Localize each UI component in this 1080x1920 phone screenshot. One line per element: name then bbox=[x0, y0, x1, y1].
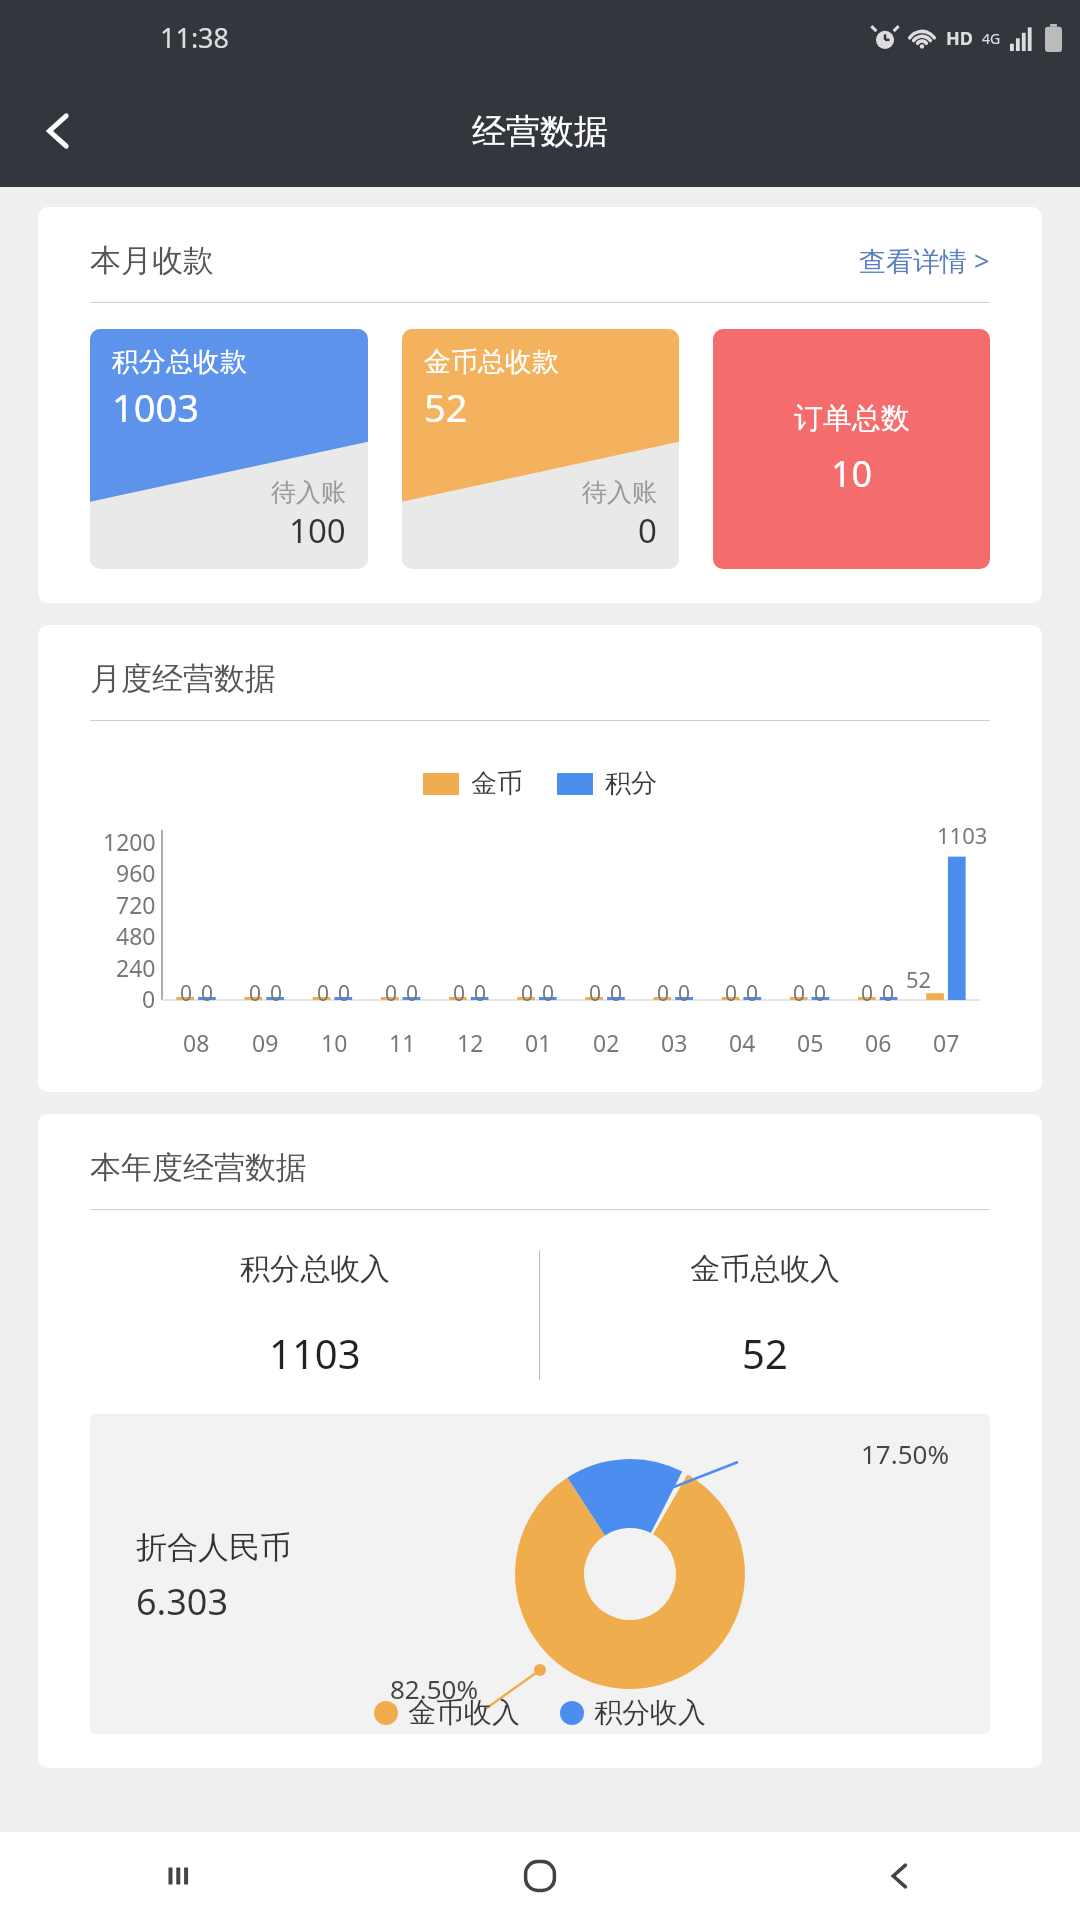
staticText: 240 bbox=[116, 952, 156, 983]
staticText: 折合人民币 bbox=[136, 1528, 291, 1567]
staticText: 0 bbox=[270, 979, 283, 1008]
staticText: 0 bbox=[814, 979, 827, 1008]
staticText: 0 bbox=[317, 979, 330, 1008]
staticText: 0 bbox=[638, 508, 657, 553]
staticText: 11 bbox=[389, 1027, 416, 1058]
staticText: 0 bbox=[453, 979, 466, 1008]
button[interactable]: Back bbox=[720, 1832, 1080, 1920]
button[interactable]: Back bbox=[28, 100, 90, 162]
staticText: 0 bbox=[338, 979, 351, 1008]
staticText: 0 bbox=[249, 979, 262, 1008]
staticText: 0 bbox=[610, 979, 623, 1008]
staticText: 03 bbox=[661, 1027, 688, 1058]
staticText: 4G bbox=[982, 29, 1001, 48]
staticText: 1003 bbox=[112, 381, 199, 433]
staticText: 0 bbox=[589, 979, 602, 1008]
staticText: 查看详情 > bbox=[859, 242, 990, 279]
staticText: 0 bbox=[793, 979, 806, 1008]
staticText: 07 bbox=[933, 1027, 960, 1058]
staticText: 12 bbox=[457, 1027, 484, 1058]
staticText: 0 bbox=[474, 979, 487, 1008]
staticText: 1103 bbox=[269, 1326, 361, 1380]
staticText: 05 bbox=[797, 1027, 824, 1058]
staticText: 0 bbox=[142, 983, 156, 1014]
staticText: 17.50% bbox=[861, 1436, 950, 1471]
staticText: 金币总收入 bbox=[690, 1250, 840, 1288]
staticText: 本月收款 bbox=[90, 241, 214, 280]
button[interactable]: 积分总收款 bbox=[90, 329, 368, 569]
button[interactable]: 订单总数 bbox=[713, 329, 990, 569]
staticText: 订单总数 bbox=[794, 400, 910, 437]
staticText: 0 bbox=[861, 979, 874, 1008]
staticText: 480 bbox=[116, 920, 156, 951]
staticText: 720 bbox=[116, 889, 156, 920]
staticText: 10 bbox=[321, 1027, 348, 1058]
button[interactable]: 金币总收款 bbox=[402, 329, 679, 569]
staticText: 0 bbox=[657, 979, 670, 1008]
staticText: 积分总收入 bbox=[240, 1250, 390, 1288]
staticText: 积分 bbox=[605, 767, 657, 800]
staticText: 52 bbox=[742, 1326, 788, 1380]
staticText: 04 bbox=[729, 1027, 756, 1058]
staticText: 金币收入 bbox=[408, 1695, 520, 1730]
staticText: 0 bbox=[406, 979, 419, 1008]
staticText: 06 bbox=[865, 1027, 892, 1058]
button[interactable]: Home bbox=[360, 1832, 720, 1920]
staticText: 0 bbox=[746, 979, 759, 1008]
staticText: 02 bbox=[593, 1027, 620, 1058]
staticText: 08 bbox=[183, 1027, 210, 1058]
staticText: HD bbox=[946, 26, 973, 51]
staticText: 0 bbox=[385, 979, 398, 1008]
staticText: 金币 bbox=[471, 767, 523, 800]
staticText: 待入账 bbox=[271, 477, 346, 508]
staticText: 本年度经营数据 bbox=[90, 1148, 307, 1187]
staticText: 月度经营数据 bbox=[90, 659, 276, 698]
staticText: 960 bbox=[116, 857, 156, 888]
staticText: 1103 bbox=[937, 820, 988, 850]
staticText: 6.303 bbox=[136, 1577, 229, 1626]
staticText: 0 bbox=[725, 979, 738, 1008]
staticText: 52 bbox=[906, 964, 932, 994]
button[interactable]: 查看详情 > bbox=[859, 242, 990, 279]
staticText: 0 bbox=[201, 979, 214, 1008]
staticText: 10 bbox=[831, 449, 873, 498]
staticText: 09 bbox=[252, 1027, 279, 1058]
staticText: 积分总收款 bbox=[112, 345, 247, 379]
staticText: 1200 bbox=[103, 826, 156, 857]
staticText: 0 bbox=[678, 979, 691, 1008]
staticText: 金币总收款 bbox=[424, 345, 559, 379]
staticText: 52 bbox=[424, 381, 468, 433]
staticText: 0 bbox=[542, 979, 555, 1008]
staticText: 经营数据 bbox=[472, 110, 608, 153]
staticText: 0 bbox=[180, 979, 193, 1008]
staticText: 0 bbox=[521, 979, 534, 1008]
staticText: 82.50% bbox=[390, 1671, 479, 1706]
staticText: 100 bbox=[289, 508, 346, 553]
staticText: 待入账 bbox=[582, 477, 657, 508]
button[interactable]: Recents bbox=[0, 1832, 360, 1920]
staticText: 01 bbox=[525, 1027, 552, 1058]
staticText: 11:38 bbox=[160, 19, 230, 56]
staticText: 积分收入 bbox=[594, 1695, 706, 1730]
staticText: 0 bbox=[882, 979, 895, 1008]
